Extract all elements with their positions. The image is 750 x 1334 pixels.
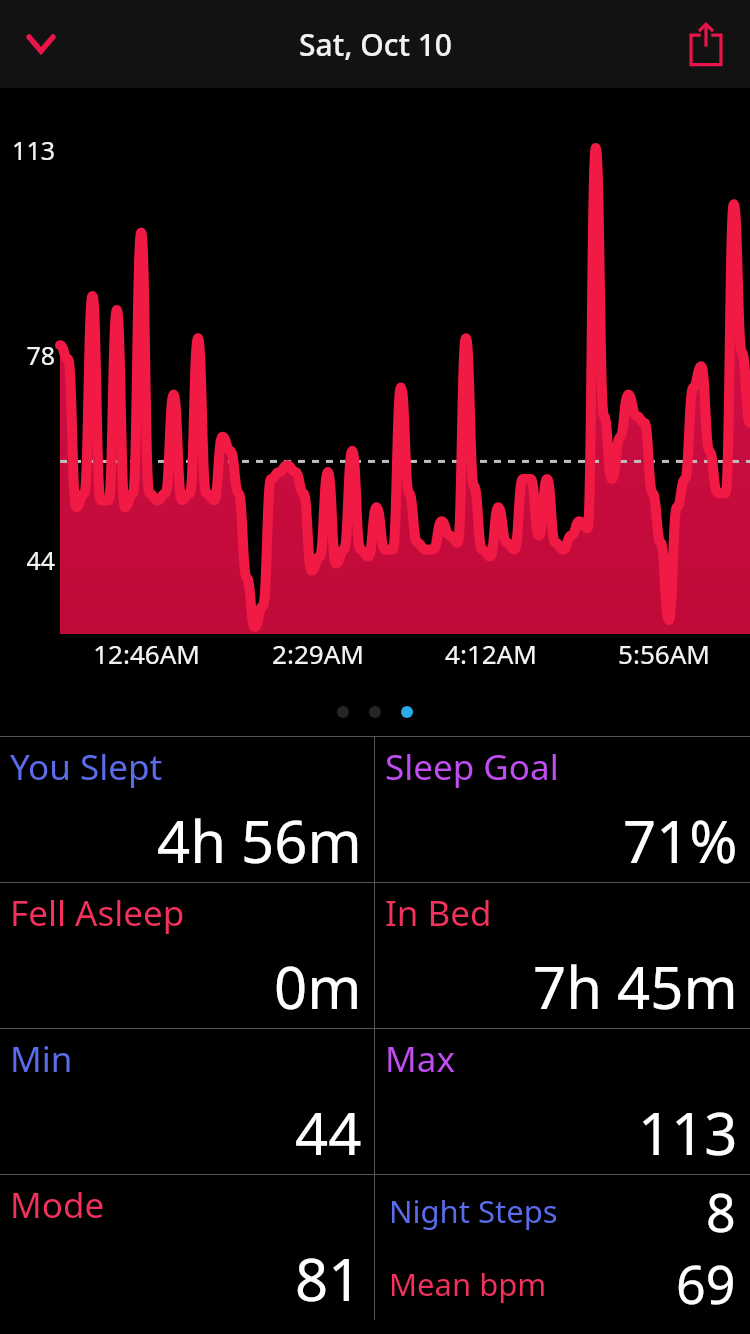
staticText: 5:56AM [618, 636, 710, 671]
staticText: 44 [0, 543, 55, 577]
staticText: 0m [274, 947, 362, 1026]
staticText: 78 [0, 338, 55, 372]
staticText: 113 [638, 1093, 738, 1172]
staticText: Mean bpm [389, 1263, 547, 1305]
button[interactable]: Min [0, 1029, 374, 1174]
staticText: 4:12AM [445, 636, 537, 671]
staticText: Night Steps [389, 1190, 558, 1232]
button[interactable]: Mean bpm [375, 1247, 750, 1320]
staticText: 12:46AM [93, 636, 200, 671]
staticText: Max [385, 1035, 455, 1083]
staticText: In Bed [385, 889, 492, 937]
button[interactable]: Sleep Goal [375, 737, 750, 882]
staticText: 4h 56m [157, 801, 362, 880]
button[interactable]: In Bed [375, 883, 750, 1028]
staticText: Mode [10, 1181, 105, 1229]
staticText: 69 [676, 1248, 736, 1319]
button[interactable]: Page 1 [337, 706, 349, 718]
staticText: 44 [295, 1093, 362, 1172]
button[interactable]: Fell Asleep [0, 883, 374, 1028]
staticText: Min [10, 1035, 73, 1083]
button[interactable]: Share [674, 12, 738, 76]
button[interactable]: Max [375, 1029, 750, 1174]
button[interactable]: You Slept [0, 737, 374, 882]
button[interactable]: Page 3 [401, 706, 413, 718]
staticText: 113 [0, 133, 55, 167]
button[interactable]: Page 2 [369, 706, 381, 718]
staticText: 8 [706, 1176, 736, 1247]
staticText: 2:29AM [272, 636, 364, 671]
button[interactable]: Mode [0, 1175, 374, 1320]
staticText: You Slept [10, 743, 163, 791]
staticText: 7h 45m [533, 947, 738, 1026]
staticText: 71% [623, 801, 738, 880]
staticText: 81 [295, 1239, 362, 1318]
staticText: Fell Asleep [10, 889, 185, 937]
staticText: Sat, Oct 10 [299, 24, 452, 65]
button[interactable]: Night Steps [375, 1175, 750, 1247]
staticText: Sleep Goal [385, 743, 559, 791]
button[interactable]: Collapse [10, 13, 72, 75]
